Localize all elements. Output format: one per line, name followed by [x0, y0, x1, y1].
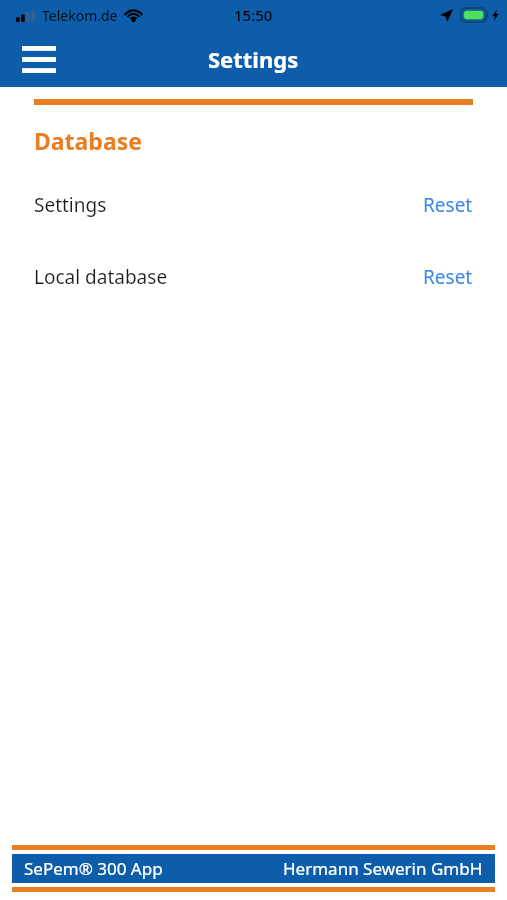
staticText: Database: [34, 125, 142, 156]
staticText: SePem® 300 App: [24, 857, 163, 880]
staticText: Settings: [34, 192, 107, 218]
button[interactable]: Open navigation menu: [12, 37, 66, 81]
staticText: Local database: [34, 264, 168, 290]
staticText: Telekom.de: [42, 6, 118, 25]
staticText: Settings: [208, 44, 299, 74]
button[interactable]: Settings: [0, 188, 507, 222]
staticText: Reset: [423, 264, 473, 290]
button[interactable]: Local database: [0, 260, 507, 294]
staticText: Reset: [423, 192, 473, 218]
staticText: 15:50: [234, 5, 273, 25]
staticText: Hermann Sewerin GmbH: [283, 857, 483, 880]
